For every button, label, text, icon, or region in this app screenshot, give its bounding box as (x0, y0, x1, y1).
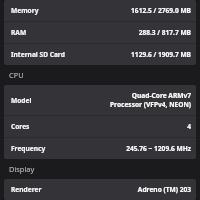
staticText: Model (11, 96, 32, 105)
staticText: Quad-Core ARMv7 Processor (VFPv4, NEON) (109, 91, 191, 109)
staticText: 1129.6 / 1909.7 MB (131, 50, 191, 59)
staticText: CPU (9, 70, 24, 80)
button[interactable]: Memory (4, 0, 196, 21)
button[interactable]: Internal SD Card (4, 44, 196, 65)
button[interactable]: Cores (4, 116, 196, 137)
staticText: Display (9, 164, 35, 174)
staticText: Memory (11, 6, 39, 15)
staticText: 4 (187, 122, 191, 131)
staticText: 1612.5 / 2769.0 MB (131, 6, 191, 15)
staticText: Adreno (TM) 203 (137, 185, 191, 194)
button[interactable]: Model (4, 85, 196, 115)
button[interactable]: Renderer (4, 179, 196, 200)
staticText: 288.3 / 817.7 MB (138, 28, 191, 37)
staticText: Cores (11, 122, 30, 131)
button[interactable]: Frequency (4, 138, 196, 159)
staticText: 245.76 ~ 1209.6 MHz (126, 144, 191, 153)
staticText: RAM (11, 28, 27, 37)
staticText: Frequency (11, 144, 46, 153)
button[interactable]: RAM (4, 22, 196, 43)
staticText: Renderer (11, 185, 42, 194)
staticText: Internal SD Card (11, 50, 65, 59)
